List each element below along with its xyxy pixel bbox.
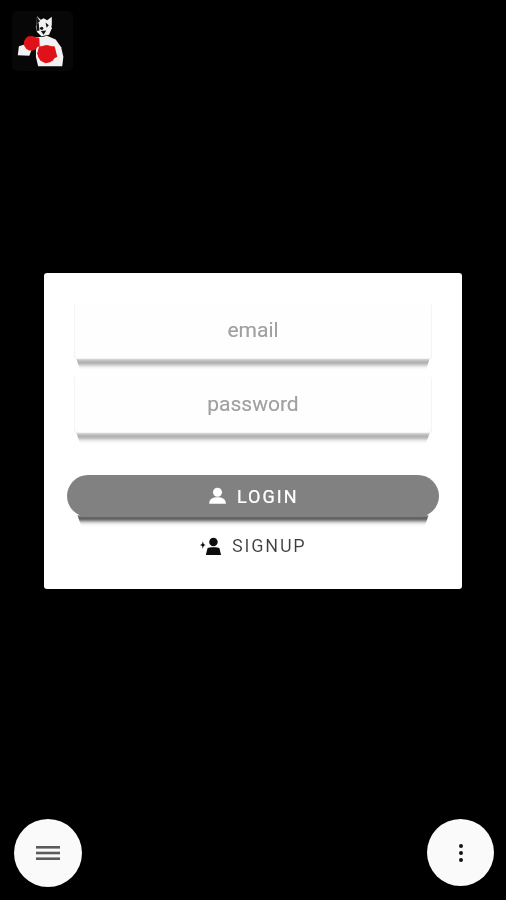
staticText: email [227, 318, 279, 343]
staticText: password [207, 392, 299, 417]
staticText: SIGNUP [232, 535, 307, 556]
button[interactable]: App logo [12, 11, 73, 71]
button[interactable]: More options [427, 819, 494, 886]
button[interactable]: SIGNUP [192, 530, 315, 561]
button[interactable]: Menu [14, 819, 82, 887]
button[interactable]: LOGIN [67, 475, 439, 517]
staticText: LOGIN [237, 486, 299, 507]
button[interactable]: email [75, 303, 431, 358]
button[interactable]: password [75, 376, 431, 432]
